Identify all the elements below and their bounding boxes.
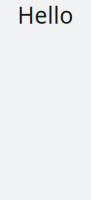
staticText: Hello — [17, 0, 73, 30]
